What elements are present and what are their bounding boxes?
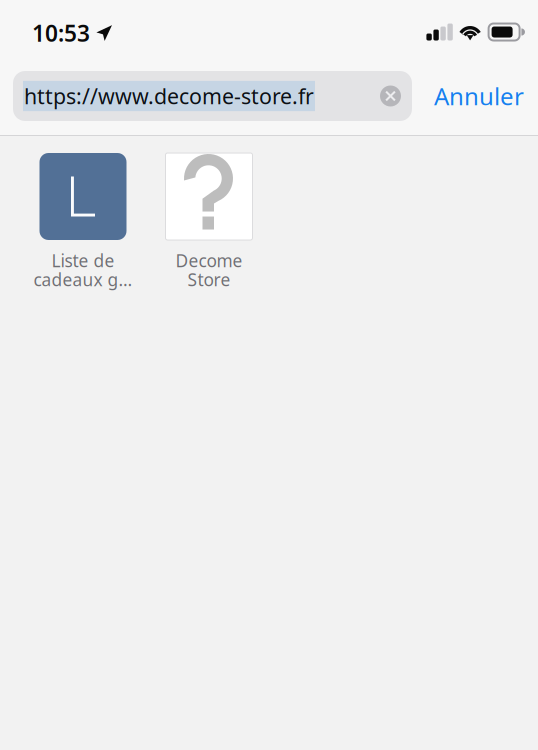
staticText: Liste de [51,249,114,272]
staticText: Annuler [434,80,524,112]
staticText: Store [187,268,230,291]
staticText: 10:53 [32,18,90,48]
staticText: Decome [175,249,242,272]
button[interactable]: Annuler [426,71,532,121]
button[interactable]: Liste de [20,153,146,291]
staticText: cadeaux g… [33,268,132,291]
button[interactable]: Clear text [380,71,412,120]
staticText: https://www.decome-store.fr [24,82,314,110]
button[interactable]: Decome [146,153,272,291]
